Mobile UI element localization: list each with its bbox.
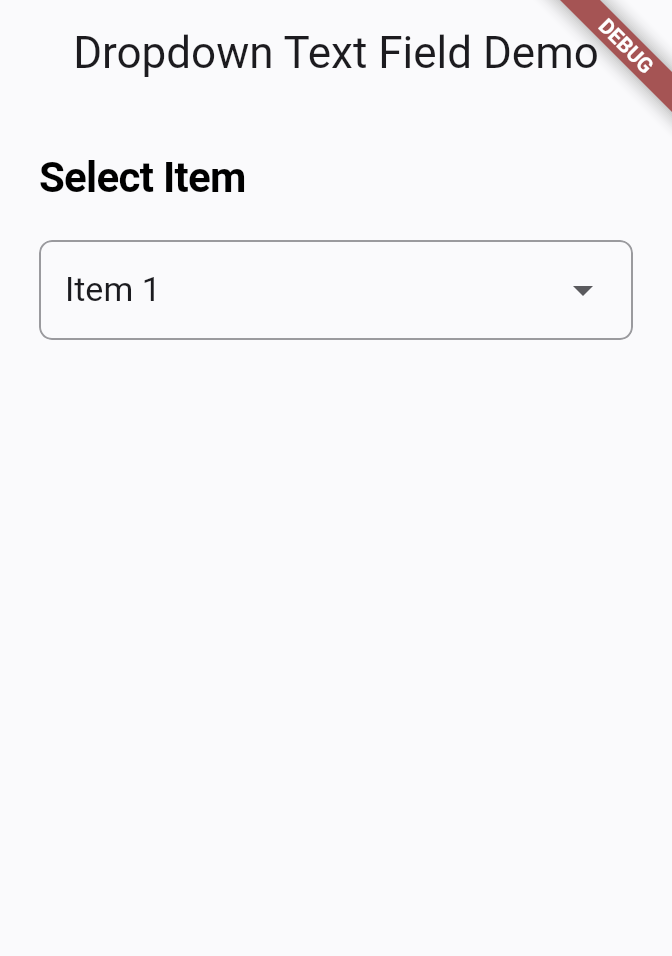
staticText: Select Item	[39, 153, 246, 202]
staticText: Item 1	[65, 269, 161, 309]
button[interactable]: Item 1	[39, 240, 633, 340]
staticText: DEBUG	[593, 14, 658, 79]
staticText: Dropdown Text Field Demo	[73, 27, 599, 79]
